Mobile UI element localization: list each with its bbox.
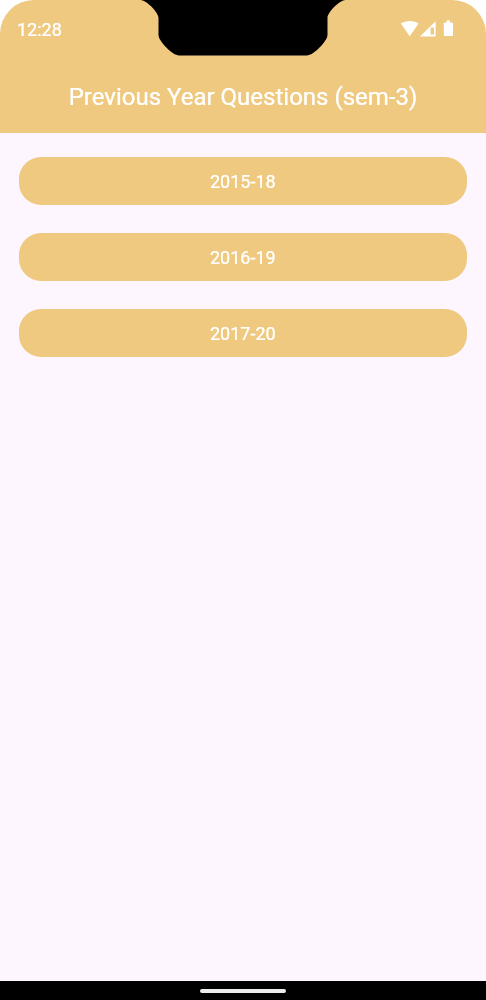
staticText: 2016-19	[210, 247, 276, 268]
staticText: 2017-20	[210, 323, 276, 344]
button[interactable]: 2016-19	[19, 233, 467, 281]
staticText: 2015-18	[210, 171, 276, 192]
staticText: 12:28	[17, 19, 62, 40]
button[interactable]: 2017-20	[19, 309, 467, 357]
staticText: Previous Year Questions (sem-3)	[0, 83, 486, 111]
button[interactable]: 2015-18	[19, 157, 467, 205]
other: Status icons	[398, 20, 454, 37]
